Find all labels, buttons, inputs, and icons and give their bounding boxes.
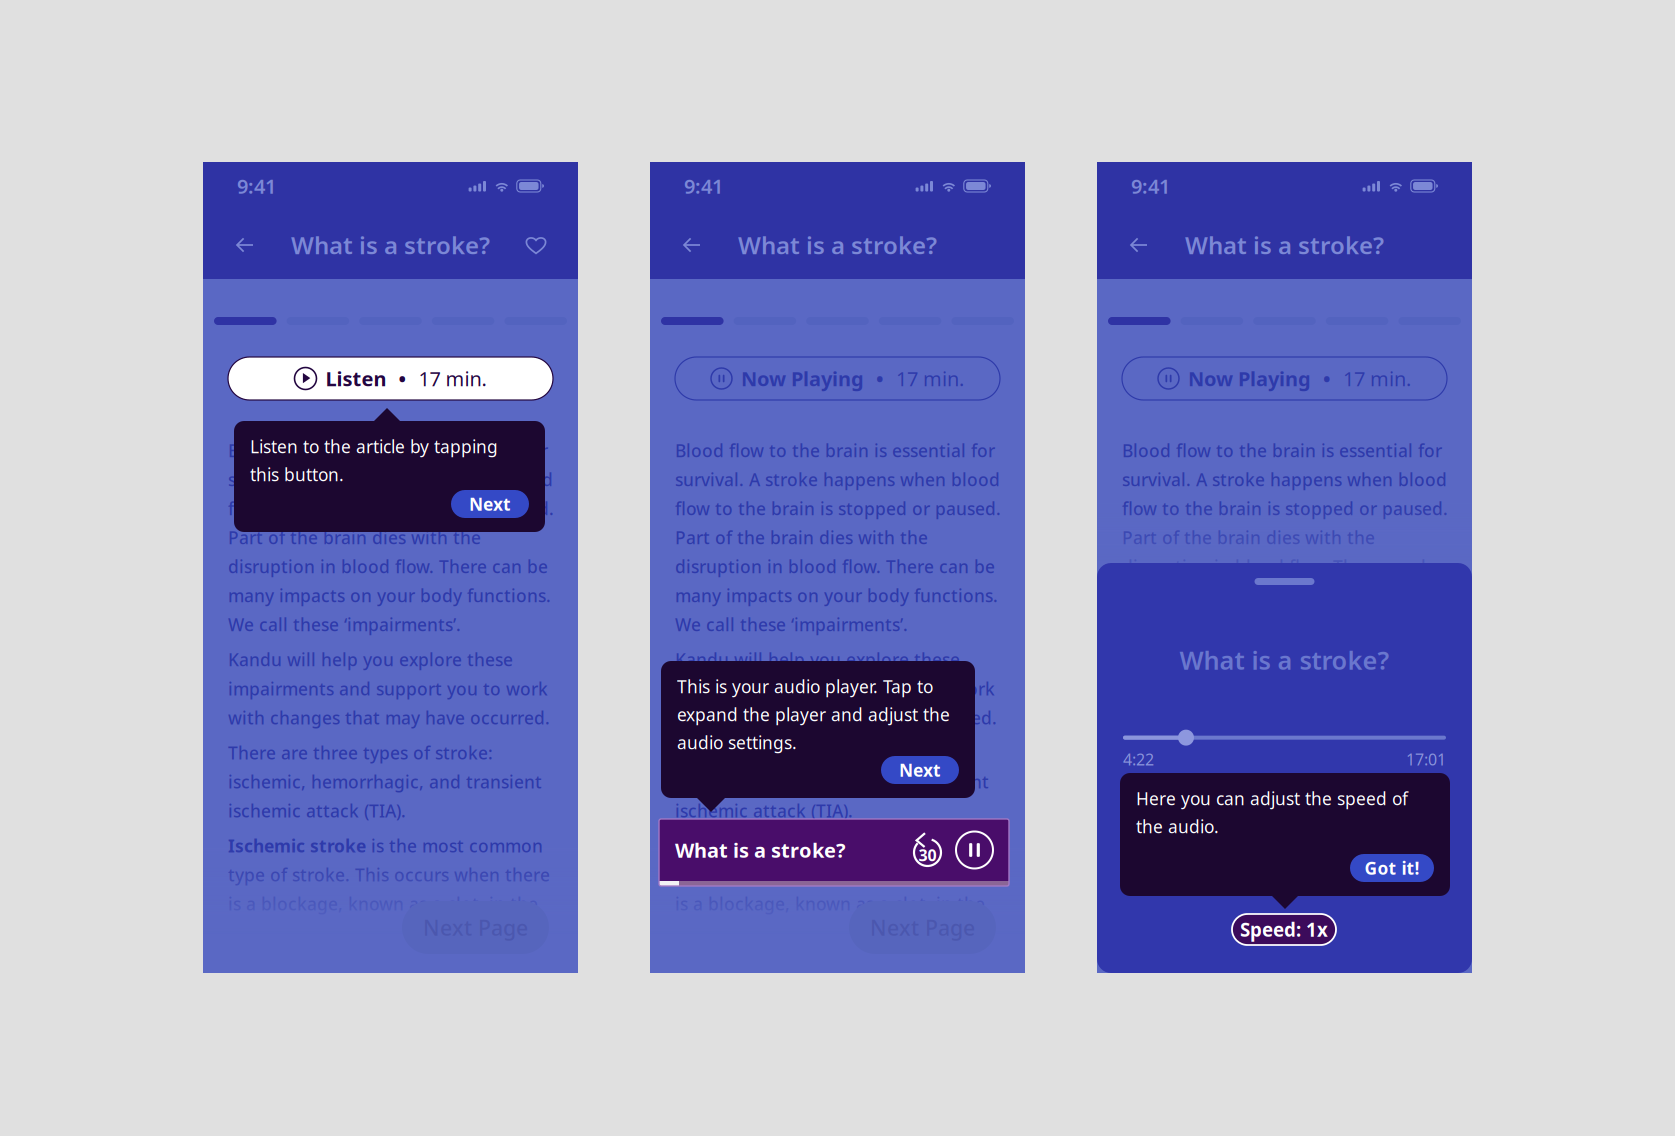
button[interactable]: Now Playing [675, 357, 1000, 400]
staticText: What is a stroke? [738, 229, 937, 261]
staticText: Kandu will help you explore these impair… [228, 648, 550, 729]
staticText: 9:41 [684, 173, 723, 199]
staticText: 17 min. [1343, 365, 1411, 392]
staticText: 4:22 [1123, 749, 1154, 770]
staticText: This is your audio player. Tap to expand… [677, 675, 950, 754]
staticText: Ischemic stroke is the most common type … [1122, 834, 1444, 915]
staticText: Got it! [1364, 856, 1419, 879]
button[interactable]: Next [451, 490, 529, 518]
staticText: What is a stroke? [291, 229, 490, 261]
staticText: Now Playing [741, 365, 864, 392]
staticText: Kandu will help you explore these impair… [675, 648, 997, 729]
staticText: Kandu will help you explore these impair… [1122, 648, 1444, 729]
staticText: There are three types of stroke: ischemi… [1122, 741, 1436, 822]
button[interactable]: What is a stroke? [659, 819, 1009, 886]
staticText: What is a stroke? [1185, 229, 1384, 261]
staticText: There are three types of stroke: ischemi… [675, 741, 989, 822]
staticText: Listen to the article by tapping this bu… [250, 435, 498, 486]
button[interactable]: Next Page [402, 901, 549, 954]
staticText: 9:41 [1131, 173, 1170, 199]
staticText: Now Playing [1188, 365, 1311, 392]
staticText: 17 min. [418, 365, 486, 392]
staticText: Ischemic stroke is the most common type … [228, 834, 550, 915]
staticText: Ischemic stroke is the most common type … [675, 834, 997, 915]
staticText: What is a stroke? [1179, 643, 1389, 677]
staticText: Next Page [870, 913, 975, 942]
button[interactable]: Back [675, 228, 709, 262]
staticText: 17 min. [896, 365, 964, 392]
staticText: 17:01 [1406, 749, 1446, 770]
staticText: • [876, 365, 884, 392]
staticText: Here you can adjust the speed of the aud… [1136, 787, 1408, 838]
staticText: What is a stroke? [675, 837, 846, 863]
button[interactable]: Next [881, 756, 959, 784]
staticText: Blood flow to the brain is essential for… [675, 439, 1001, 636]
staticText: There are three types of stroke: ischemi… [228, 741, 542, 822]
staticText: Speed: 1x [1240, 917, 1328, 942]
button[interactable]: Back [1122, 228, 1156, 262]
staticText: • [398, 365, 406, 392]
button[interactable]: Speed: 1x [1232, 914, 1336, 945]
staticText: • [1323, 365, 1331, 392]
staticText: 9:41 [237, 173, 276, 199]
staticText: Listen [325, 365, 386, 392]
staticText: Blood flow to the brain is essential for… [228, 439, 554, 636]
button[interactable]: Got it! [1350, 854, 1434, 882]
staticText: Blood flow to the brain is essential for… [1122, 439, 1448, 636]
staticText: 30 [918, 844, 936, 866]
button[interactable]: Save to favourites [519, 228, 553, 262]
button[interactable]: Now Playing [1122, 357, 1447, 400]
button[interactable]: Listen [228, 357, 553, 400]
button[interactable]: Back [228, 228, 262, 262]
staticText: Next [899, 758, 941, 781]
button[interactable]: Next Page [849, 901, 996, 954]
staticText: Next [469, 492, 511, 515]
staticText: Next Page [423, 913, 528, 942]
